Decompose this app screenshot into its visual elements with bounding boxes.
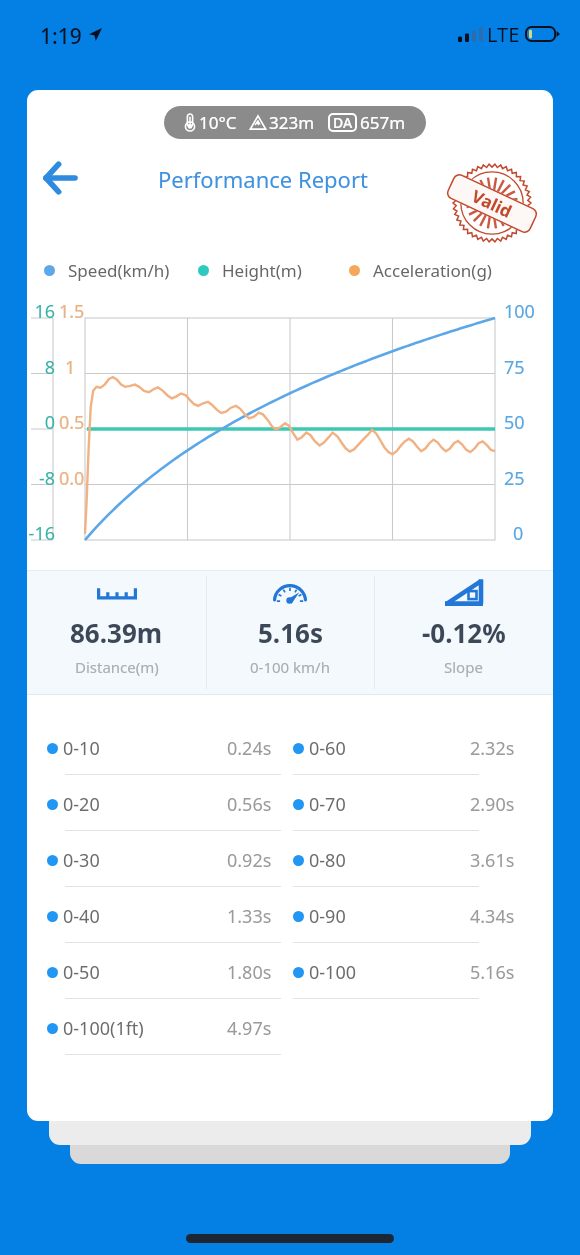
- staticText: 0-80: [309, 848, 346, 873]
- staticText: Height(m): [222, 259, 302, 282]
- button[interactable]: -0.12%: [374, 570, 553, 695]
- staticText: DA: [333, 113, 353, 132]
- staticText: LTE: [487, 21, 520, 47]
- staticText: 0-100(1ft): [63, 1016, 144, 1041]
- staticText: 4.34s: [470, 904, 515, 929]
- button[interactable]: 0-10: [47, 730, 272, 782]
- staticText: 2.32s: [470, 736, 515, 761]
- staticText: 0-90: [309, 904, 346, 929]
- staticText: 0-20: [63, 792, 100, 817]
- staticText: 8: [44, 355, 55, 380]
- staticText: Slope: [444, 657, 483, 677]
- staticText: -0.12%: [422, 615, 506, 650]
- staticText: 0.92s: [227, 848, 272, 873]
- button[interactable]: 0-40: [47, 898, 272, 950]
- staticText: -16: [28, 521, 55, 546]
- staticText: 0: [513, 521, 524, 546]
- staticText: 3.61s: [470, 848, 515, 873]
- staticText: 75: [504, 355, 525, 380]
- staticText: Valid: [468, 184, 516, 223]
- staticText: 25: [504, 466, 525, 491]
- staticText: 0-60: [309, 736, 346, 761]
- staticText: 5.16s: [470, 960, 515, 985]
- staticText: 0.56s: [227, 792, 272, 817]
- button[interactable]: 0-100: [293, 954, 515, 1006]
- staticText: 0-30: [63, 848, 100, 873]
- staticText: 1:19: [40, 22, 82, 46]
- staticText: 86.39m: [70, 615, 163, 650]
- staticText: 2.90s: [470, 792, 515, 817]
- staticText: 5.16s: [258, 615, 323, 650]
- staticText: Acceleration(g): [373, 259, 492, 282]
- button[interactable]: 0-30: [47, 842, 272, 894]
- staticText: 0-40: [63, 904, 100, 929]
- button[interactable]: 86.39m: [27, 570, 206, 695]
- staticText: -8: [38, 466, 55, 491]
- staticText: 0: [44, 410, 55, 435]
- staticText: 657m: [360, 111, 406, 134]
- staticText: 50: [504, 410, 525, 435]
- staticText: 1.80s: [227, 960, 272, 985]
- staticText: 0-10: [63, 736, 100, 761]
- staticText: 0-50: [63, 960, 100, 985]
- staticText: 0-100: [309, 960, 356, 985]
- button[interactable]: 0-60: [293, 730, 515, 782]
- button[interactable]: 0-80: [293, 842, 515, 894]
- staticText: Distance(m): [75, 657, 159, 677]
- staticText: 1: [65, 355, 76, 380]
- staticText: 0-70: [309, 792, 346, 817]
- staticText: 323m: [269, 111, 315, 134]
- staticText: 100: [504, 299, 535, 324]
- staticText: 1.33s: [227, 904, 272, 929]
- staticText: 0-100 km/h: [250, 657, 330, 677]
- button[interactable]: 0-100(1ft): [47, 1010, 272, 1062]
- button[interactable]: Back: [34, 152, 86, 204]
- staticText: 16: [34, 299, 55, 324]
- button[interactable]: 0-90: [293, 898, 515, 950]
- staticText: 0.24s: [227, 736, 272, 761]
- button[interactable]: 5.16s: [206, 570, 374, 695]
- staticText: 1.5: [59, 299, 85, 324]
- staticText: 10°C: [199, 111, 237, 134]
- button[interactable]: 0-20: [47, 786, 272, 838]
- staticText: 4.97s: [227, 1016, 272, 1041]
- button[interactable]: 0-70: [293, 786, 515, 838]
- staticText: Performance Report: [158, 164, 368, 194]
- staticText: Speed(km/h): [68, 259, 170, 282]
- staticText: 0.5: [59, 410, 85, 435]
- staticText: 0.0: [59, 466, 85, 491]
- button[interactable]: 0-50: [47, 954, 272, 1006]
